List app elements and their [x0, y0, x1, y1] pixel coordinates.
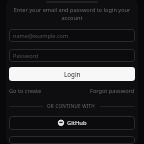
- button[interactable]: Forgot password: [90, 86, 135, 96]
- button[interactable]: [9, 136, 135, 144]
- staticText: OR CONTINUE WITH: [47, 103, 96, 109]
- button[interactable]: name@example.com: [9, 29, 135, 42]
- staticText: Forgot password: [90, 87, 135, 95]
- staticText: Login: [64, 70, 81, 78]
- staticText: Enter your email and password to login y…: [13, 6, 131, 21]
- staticText: GitHub: [67, 119, 87, 127]
- button[interactable]: Password: [9, 49, 135, 62]
- other: GitHub: [58, 120, 64, 126]
- button[interactable]: Go to create: [9, 86, 42, 96]
- button[interactable]: GitHub: [9, 116, 135, 130]
- staticText: name@example.com: [13, 32, 69, 40]
- staticText: Password: [13, 52, 39, 60]
- button[interactable]: Login: [9, 67, 135, 81]
- staticText: Go to create: [9, 87, 42, 95]
